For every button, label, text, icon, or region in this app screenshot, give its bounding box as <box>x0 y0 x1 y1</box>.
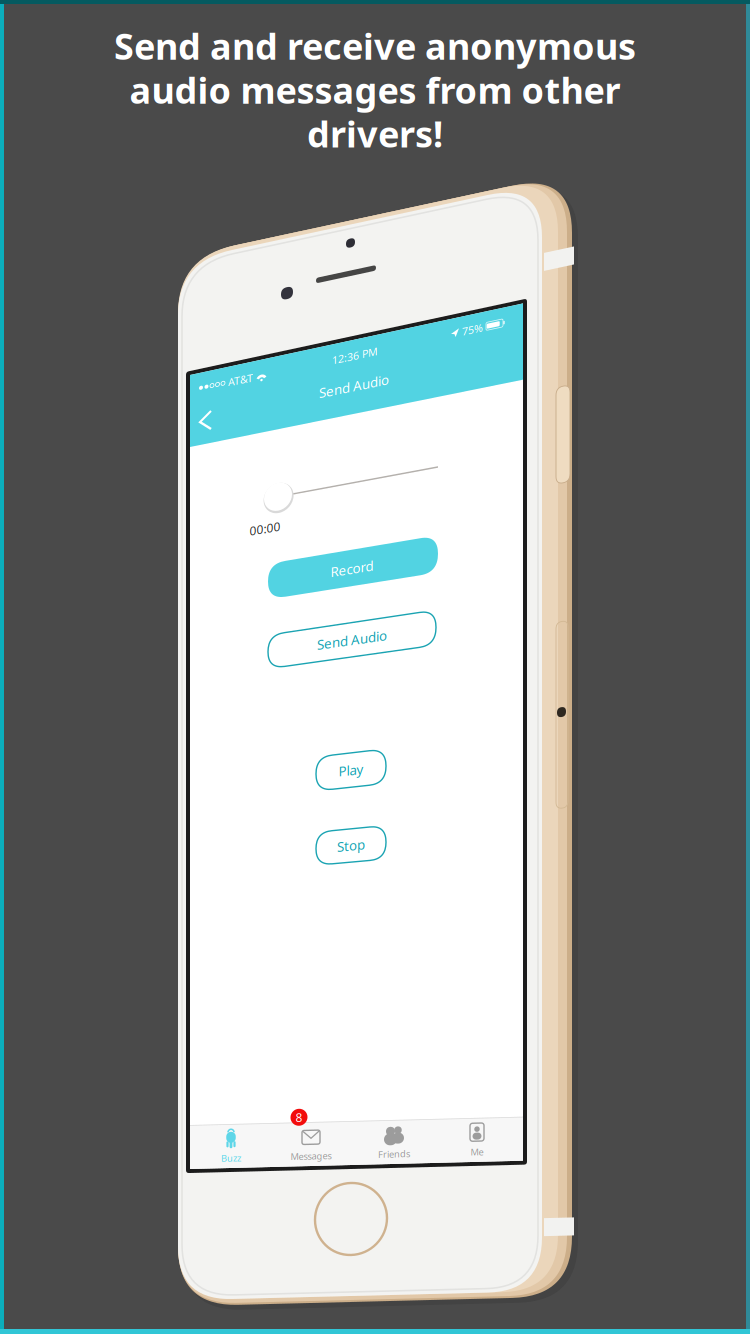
staticText: 8 <box>295 1117 302 1133</box>
button[interactable]: Back <box>189 443 223 477</box>
staticText: 00:00 <box>249 565 280 580</box>
button[interactable]: Record <box>0 0 750 1334</box>
button[interactable]: Messages <box>272 1132 350 1172</box>
staticText: Send and receive anonymous <box>114 22 636 70</box>
staticText: Buzz <box>221 1158 241 1170</box>
staticText: Messages <box>290 1158 331 1170</box>
staticText: Record <box>330 615 373 633</box>
button[interactable]: Friends <box>355 1132 433 1172</box>
staticText: audio messages from other <box>129 66 620 114</box>
staticText: AT&T <box>228 421 253 435</box>
staticText: Me <box>470 1158 483 1170</box>
button[interactable]: Me <box>438 1132 516 1172</box>
button[interactable]: Buzz <box>192 1132 270 1172</box>
button[interactable]: Play <box>0 0 750 1334</box>
staticText: drivers! <box>307 110 443 157</box>
button[interactable]: Stop <box>0 0 750 1334</box>
button[interactable]: Send Audio <box>0 0 750 1334</box>
staticText: Friends <box>378 1158 410 1170</box>
